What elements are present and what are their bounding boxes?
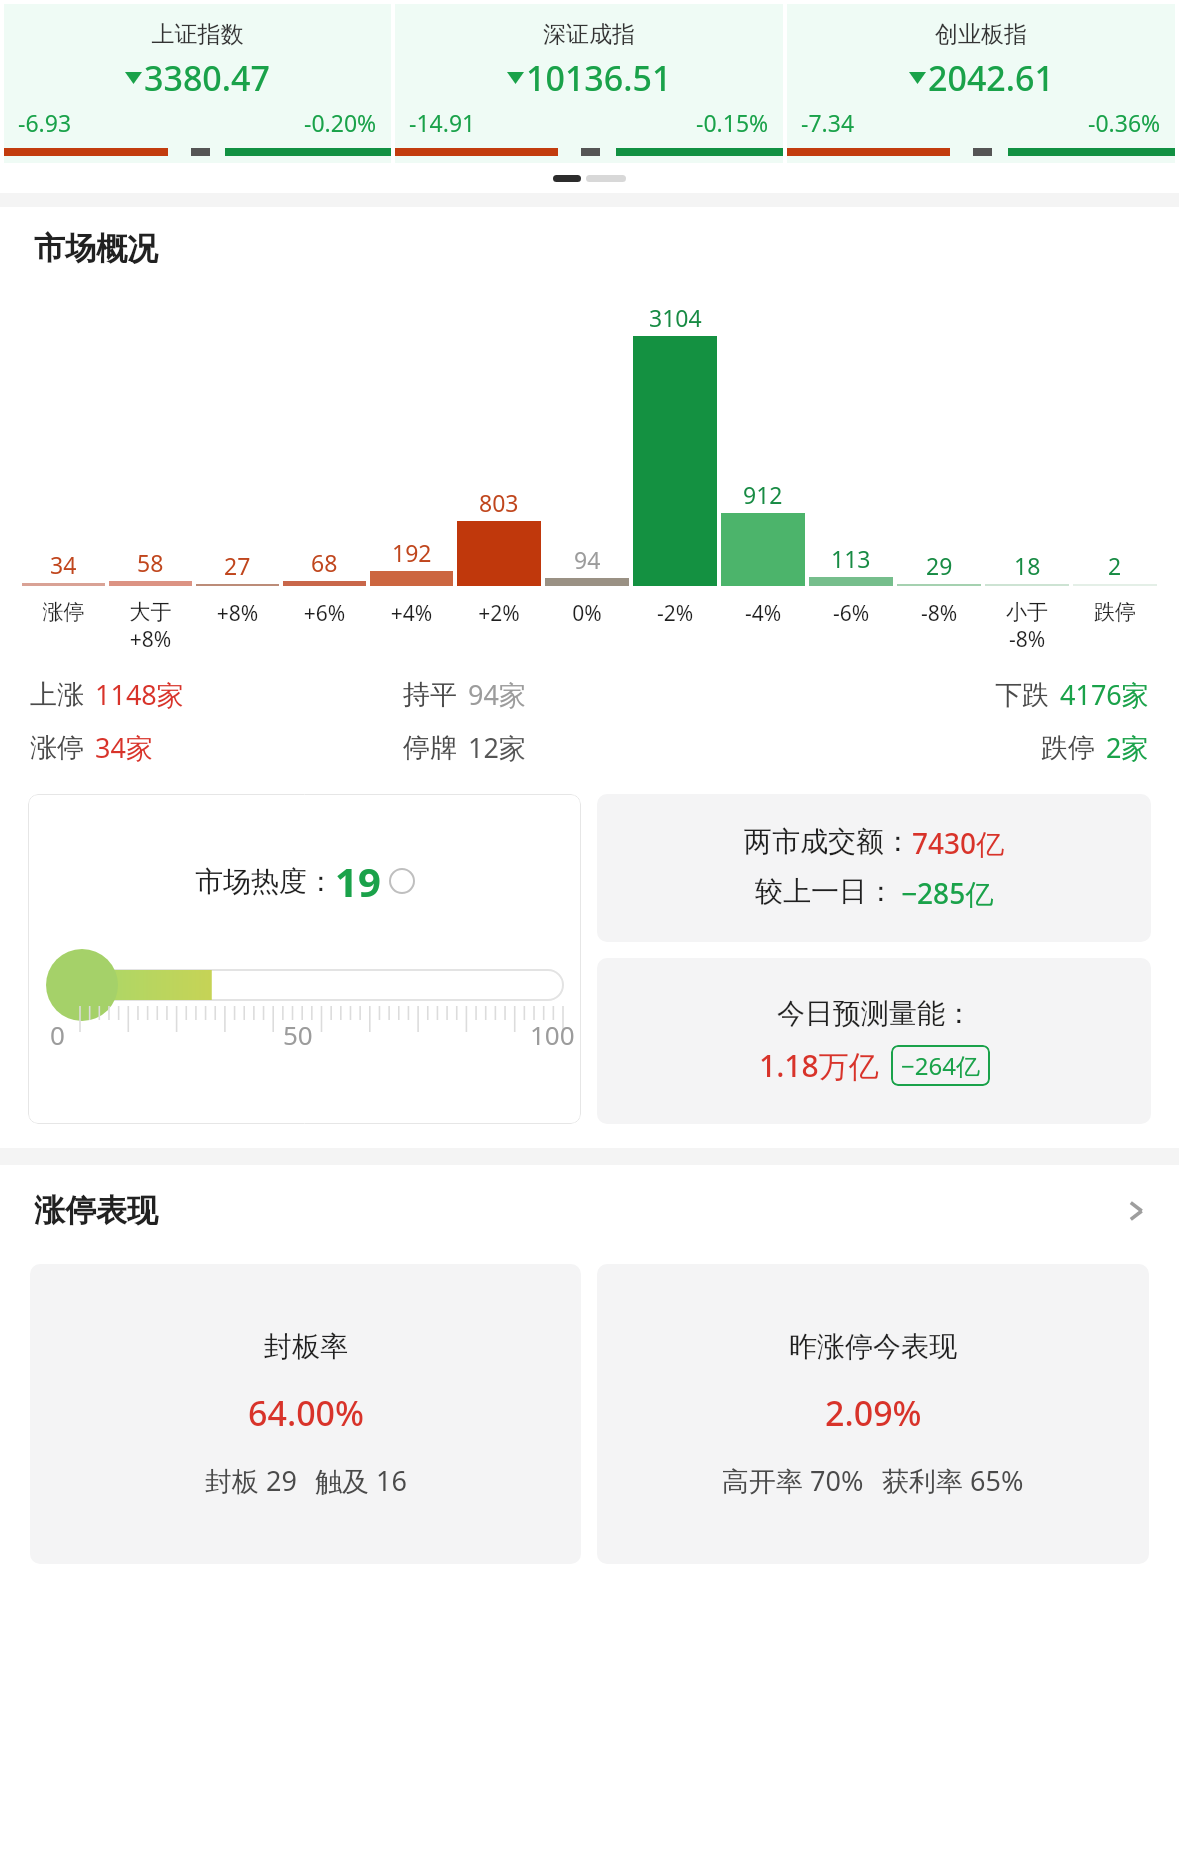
staticText: 4176家: [1060, 676, 1149, 713]
button[interactable]: 两市成交额：: [597, 794, 1151, 942]
staticText: -7.34: [801, 107, 855, 138]
staticText: 高开率 70%: [722, 1462, 864, 1499]
staticText: 封板 29: [205, 1462, 297, 1499]
staticText: 停牌: [403, 731, 457, 765]
staticText: 912: [743, 479, 783, 510]
staticText: 涨停表现: [34, 1191, 158, 1230]
staticText: +2%: [457, 599, 541, 628]
staticText: +8%: [109, 625, 192, 654]
staticText: 跌停: [1041, 731, 1095, 765]
staticText: 94家: [468, 676, 526, 713]
staticText: 34家: [95, 729, 153, 766]
staticText: 深证成指: [395, 20, 783, 49]
button[interactable]: 昨涨停今表现: [597, 1264, 1149, 1564]
staticText: 10136.51: [526, 55, 672, 101]
button[interactable]: 2: [1073, 302, 1157, 625]
staticText: -0.36%: [1088, 107, 1161, 138]
button[interactable]: 58: [109, 302, 192, 654]
button[interactable]: 192: [370, 302, 453, 628]
button[interactable]: 涨停表现: [0, 1191, 1179, 1230]
staticText: 1148家: [95, 676, 184, 713]
staticText: 上证指数: [4, 20, 391, 49]
staticText: -8%: [985, 625, 1069, 654]
button[interactable]: 上证指数: [4, 4, 391, 163]
staticText: 113: [831, 543, 871, 574]
staticText: 19: [335, 854, 381, 908]
staticText: 192: [392, 537, 432, 568]
staticText: 今日预测量能：: [777, 996, 973, 1031]
staticText: 涨停: [30, 731, 84, 765]
staticText: 市场热度：: [195, 864, 335, 899]
staticText: 2家: [1106, 729, 1149, 766]
staticText: -6.93: [18, 107, 72, 138]
button[interactable]: 34: [22, 302, 105, 625]
staticText: 两市成交额：: [744, 824, 912, 859]
staticText: 18: [1014, 550, 1041, 581]
staticText: 获利率 65%: [882, 1462, 1024, 1499]
staticText: 27: [224, 550, 251, 581]
staticText: 34: [50, 549, 77, 580]
staticText: 市场概况: [34, 229, 158, 268]
staticText: 12家: [468, 729, 526, 766]
staticText: 2042.61: [928, 55, 1054, 101]
button[interactable]: 803: [457, 302, 541, 628]
other: 帮助: [389, 868, 415, 894]
staticText: -0.15%: [696, 107, 769, 138]
staticText: 创业板指: [787, 20, 1175, 49]
staticText: 3380.47: [144, 55, 270, 101]
staticText: 58: [137, 547, 164, 578]
staticText: -2%: [633, 599, 717, 628]
button[interactable]: 912: [721, 302, 805, 628]
staticText: 封板率: [264, 1329, 348, 1364]
staticText: 触及 16: [315, 1462, 407, 1499]
button[interactable]: 封板率: [30, 1264, 581, 1564]
button[interactable]: 今日预测量能：: [597, 958, 1151, 1124]
staticText: -0.20%: [304, 107, 377, 138]
button[interactable]: 94: [545, 302, 629, 628]
staticText: 100: [530, 1017, 575, 1052]
button[interactable]: 创业板指: [787, 4, 1175, 163]
button[interactable]: 市场热度：: [28, 794, 581, 1124]
staticText: 2: [1108, 550, 1122, 581]
staticText: 昨涨停今表现: [789, 1329, 957, 1364]
staticText: 94: [574, 544, 601, 575]
staticText: 68: [311, 547, 338, 578]
staticText: 7430亿: [912, 824, 1005, 862]
staticText: 0: [50, 1017, 65, 1052]
staticText: 涨停: [22, 599, 105, 625]
staticText: 64.00%: [248, 1390, 365, 1436]
staticText: 大于: [109, 599, 192, 625]
button[interactable]: 68: [283, 302, 366, 628]
staticText: +8%: [196, 599, 279, 628]
staticText: -6%: [809, 599, 893, 628]
staticText: 803: [479, 487, 519, 518]
staticText: 1.18万亿: [759, 1045, 879, 1086]
staticText: 小于: [985, 599, 1069, 625]
staticText: −264亿: [901, 1049, 980, 1082]
staticText: +6%: [283, 599, 366, 628]
button[interactable]: 29: [897, 302, 981, 628]
staticText: 上涨: [30, 678, 84, 712]
staticText: 50: [283, 1017, 313, 1052]
staticText: 持平: [403, 678, 457, 712]
staticText: +4%: [370, 599, 453, 628]
staticText: −285亿: [901, 874, 994, 912]
staticText: 下跌: [995, 678, 1049, 712]
button[interactable]: 深证成指: [395, 4, 783, 163]
staticText: -4%: [721, 599, 805, 628]
button[interactable]: 27: [196, 302, 279, 628]
staticText: 3104: [649, 302, 702, 333]
other: 更多: [1123, 1198, 1149, 1224]
staticText: 29: [926, 550, 953, 581]
button[interactable]: 3104: [633, 302, 717, 628]
staticText: -8%: [897, 599, 981, 628]
staticText: 2.09%: [825, 1390, 922, 1436]
button[interactable]: 113: [809, 302, 893, 628]
button[interactable]: 18: [985, 302, 1069, 654]
staticText: 0%: [545, 599, 629, 628]
staticText: 跌停: [1073, 599, 1157, 625]
staticText: -14.91: [409, 107, 476, 138]
staticText: 较上一日：: [755, 874, 895, 909]
